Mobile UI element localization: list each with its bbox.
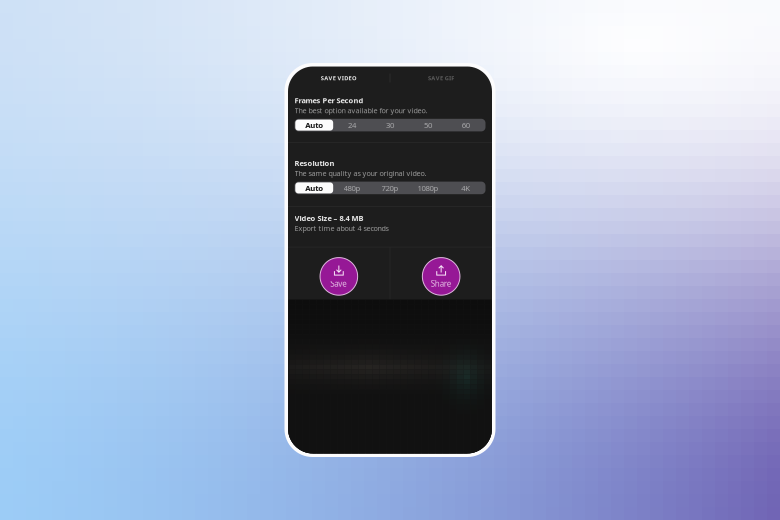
staticText: Frames Per Second	[294, 95, 363, 105]
staticText: 1080p	[417, 183, 438, 193]
staticText: The same quality as your original video.	[294, 169, 426, 178]
button[interactable]: 1080p	[409, 182, 447, 193]
staticText: 30	[386, 120, 394, 130]
staticText: Video Size – 8.4 MB	[294, 213, 363, 223]
button[interactable]: SAVE VIDEO	[288, 66, 390, 89]
staticText: Share	[431, 278, 452, 289]
staticText: SAVE GIF	[428, 74, 454, 82]
button[interactable]: 30	[371, 120, 409, 131]
staticText: Resolution	[294, 158, 334, 168]
staticText: 4K	[461, 183, 470, 193]
staticText: Export time about 4 seconds	[294, 224, 388, 233]
staticText: The best option available for your video…	[294, 106, 427, 115]
button[interactable]: 60	[447, 120, 485, 131]
button[interactable]: 50	[409, 120, 447, 131]
button[interactable]: 24	[333, 120, 371, 131]
button[interactable]: Auto	[295, 182, 333, 193]
staticText: Auto	[305, 120, 323, 130]
staticText: 480p	[344, 183, 361, 193]
staticText: 720p	[381, 183, 398, 193]
button[interactable]: 480p	[333, 182, 371, 193]
staticText: 60	[462, 120, 470, 130]
button[interactable]: Auto	[295, 120, 333, 131]
staticText: 50	[424, 120, 432, 130]
staticText: 24	[348, 120, 356, 130]
button[interactable]: 720p	[371, 182, 409, 193]
staticText: Save	[330, 278, 347, 289]
button[interactable]: 4K	[447, 182, 485, 193]
button[interactable]: SAVE GIF	[390, 66, 492, 89]
button[interactable]: Share	[390, 247, 492, 300]
staticText: Auto	[305, 183, 323, 193]
staticText: SAVE VIDEO	[321, 74, 357, 82]
button[interactable]: Save	[288, 247, 390, 300]
